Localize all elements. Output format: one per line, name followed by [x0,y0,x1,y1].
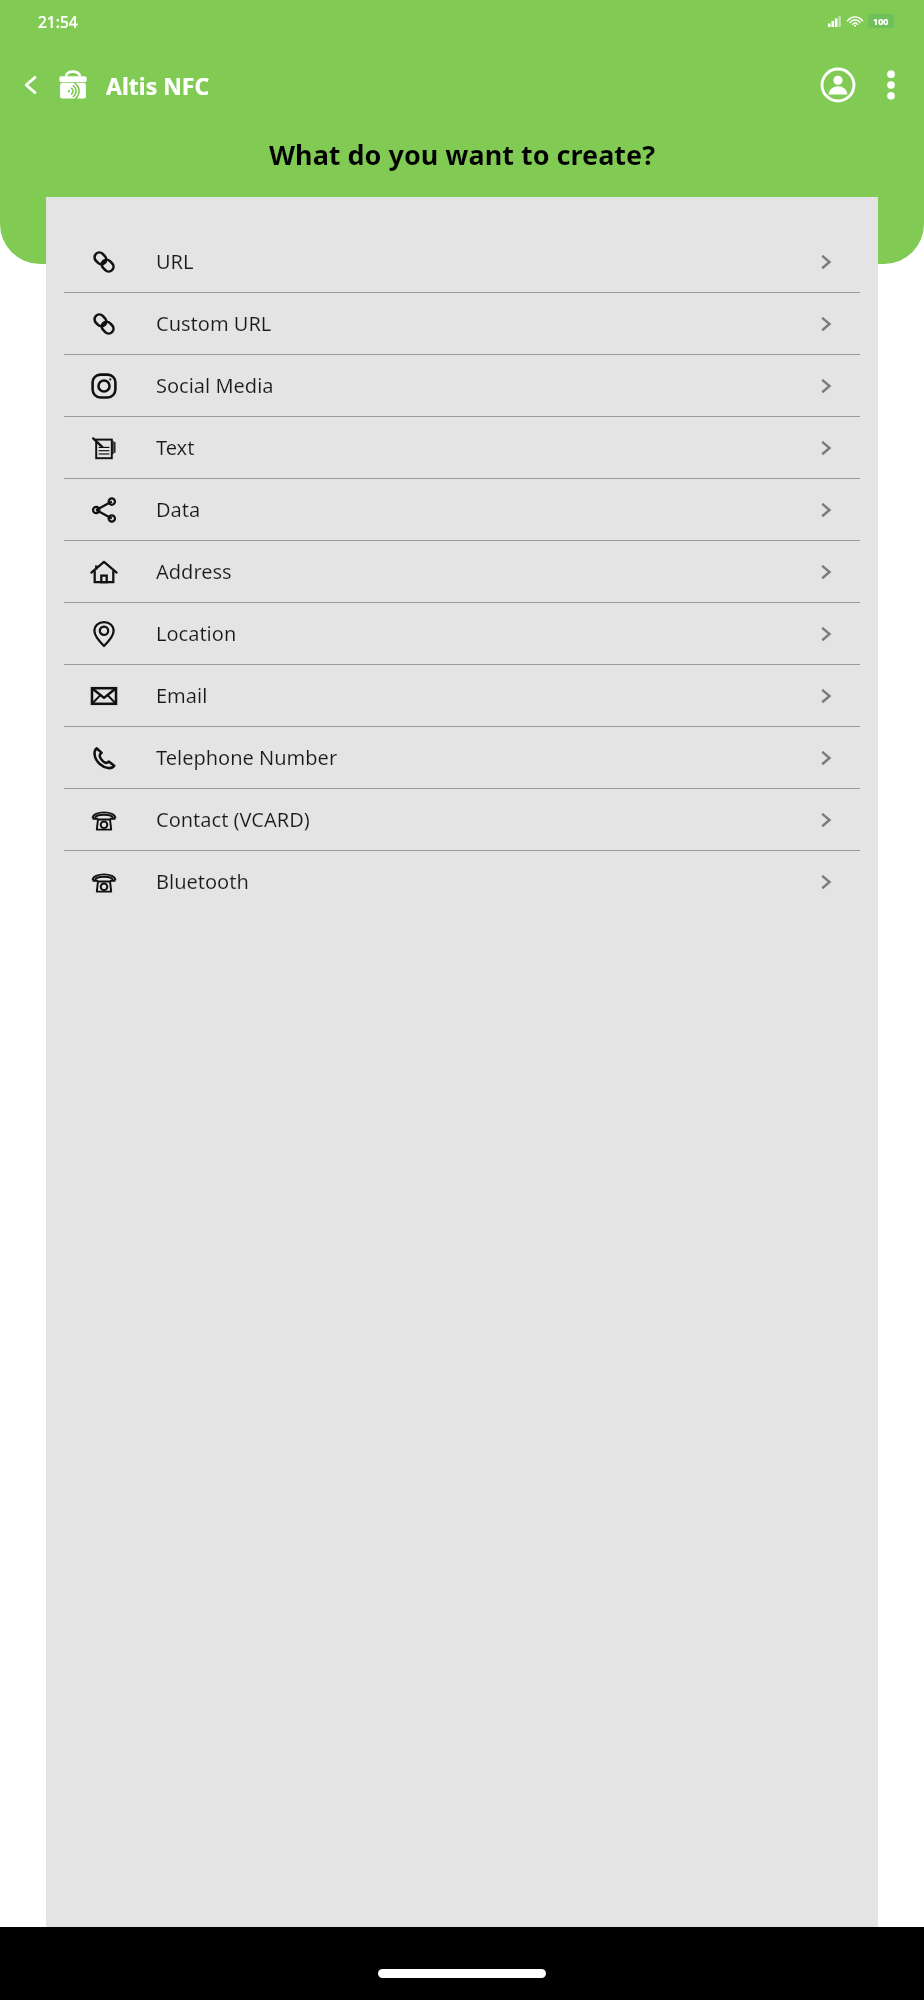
button[interactable]: Email [46,665,878,726]
staticText: Social Media [156,372,274,399]
button[interactable]: Back [8,62,54,108]
button[interactable]: More options [868,62,914,108]
staticText: Telephone Number [156,744,338,771]
button[interactable]: Location [46,603,878,664]
button[interactable]: Address [46,541,878,602]
staticText: Text [156,434,195,461]
staticText: Bluetooth [156,868,249,895]
staticText: Address [156,558,232,585]
staticText: Email [156,682,208,709]
button[interactable]: Data [46,479,878,540]
button[interactable]: Telephone Number [46,727,878,788]
button[interactable]: Bluetooth [46,851,878,912]
button[interactable]: Text [46,417,878,478]
staticText: Data [156,496,201,523]
staticText: Altis NFC [106,70,210,101]
staticText: URL [156,248,194,275]
button[interactable]: URL [46,231,878,292]
staticText: Contact (VCARD) [156,806,310,833]
staticText: Location [156,620,237,647]
button[interactable]: Social Media [46,355,878,416]
staticText: Custom URL [156,310,272,337]
staticText: 100 [873,15,889,27]
button[interactable]: Account [812,59,864,111]
staticText: What do you want to create? [24,136,900,173]
button[interactable]: Custom URL [46,293,878,354]
button[interactable]: Contact (VCARD) [46,789,878,850]
staticText: 21:54 [38,11,78,32]
